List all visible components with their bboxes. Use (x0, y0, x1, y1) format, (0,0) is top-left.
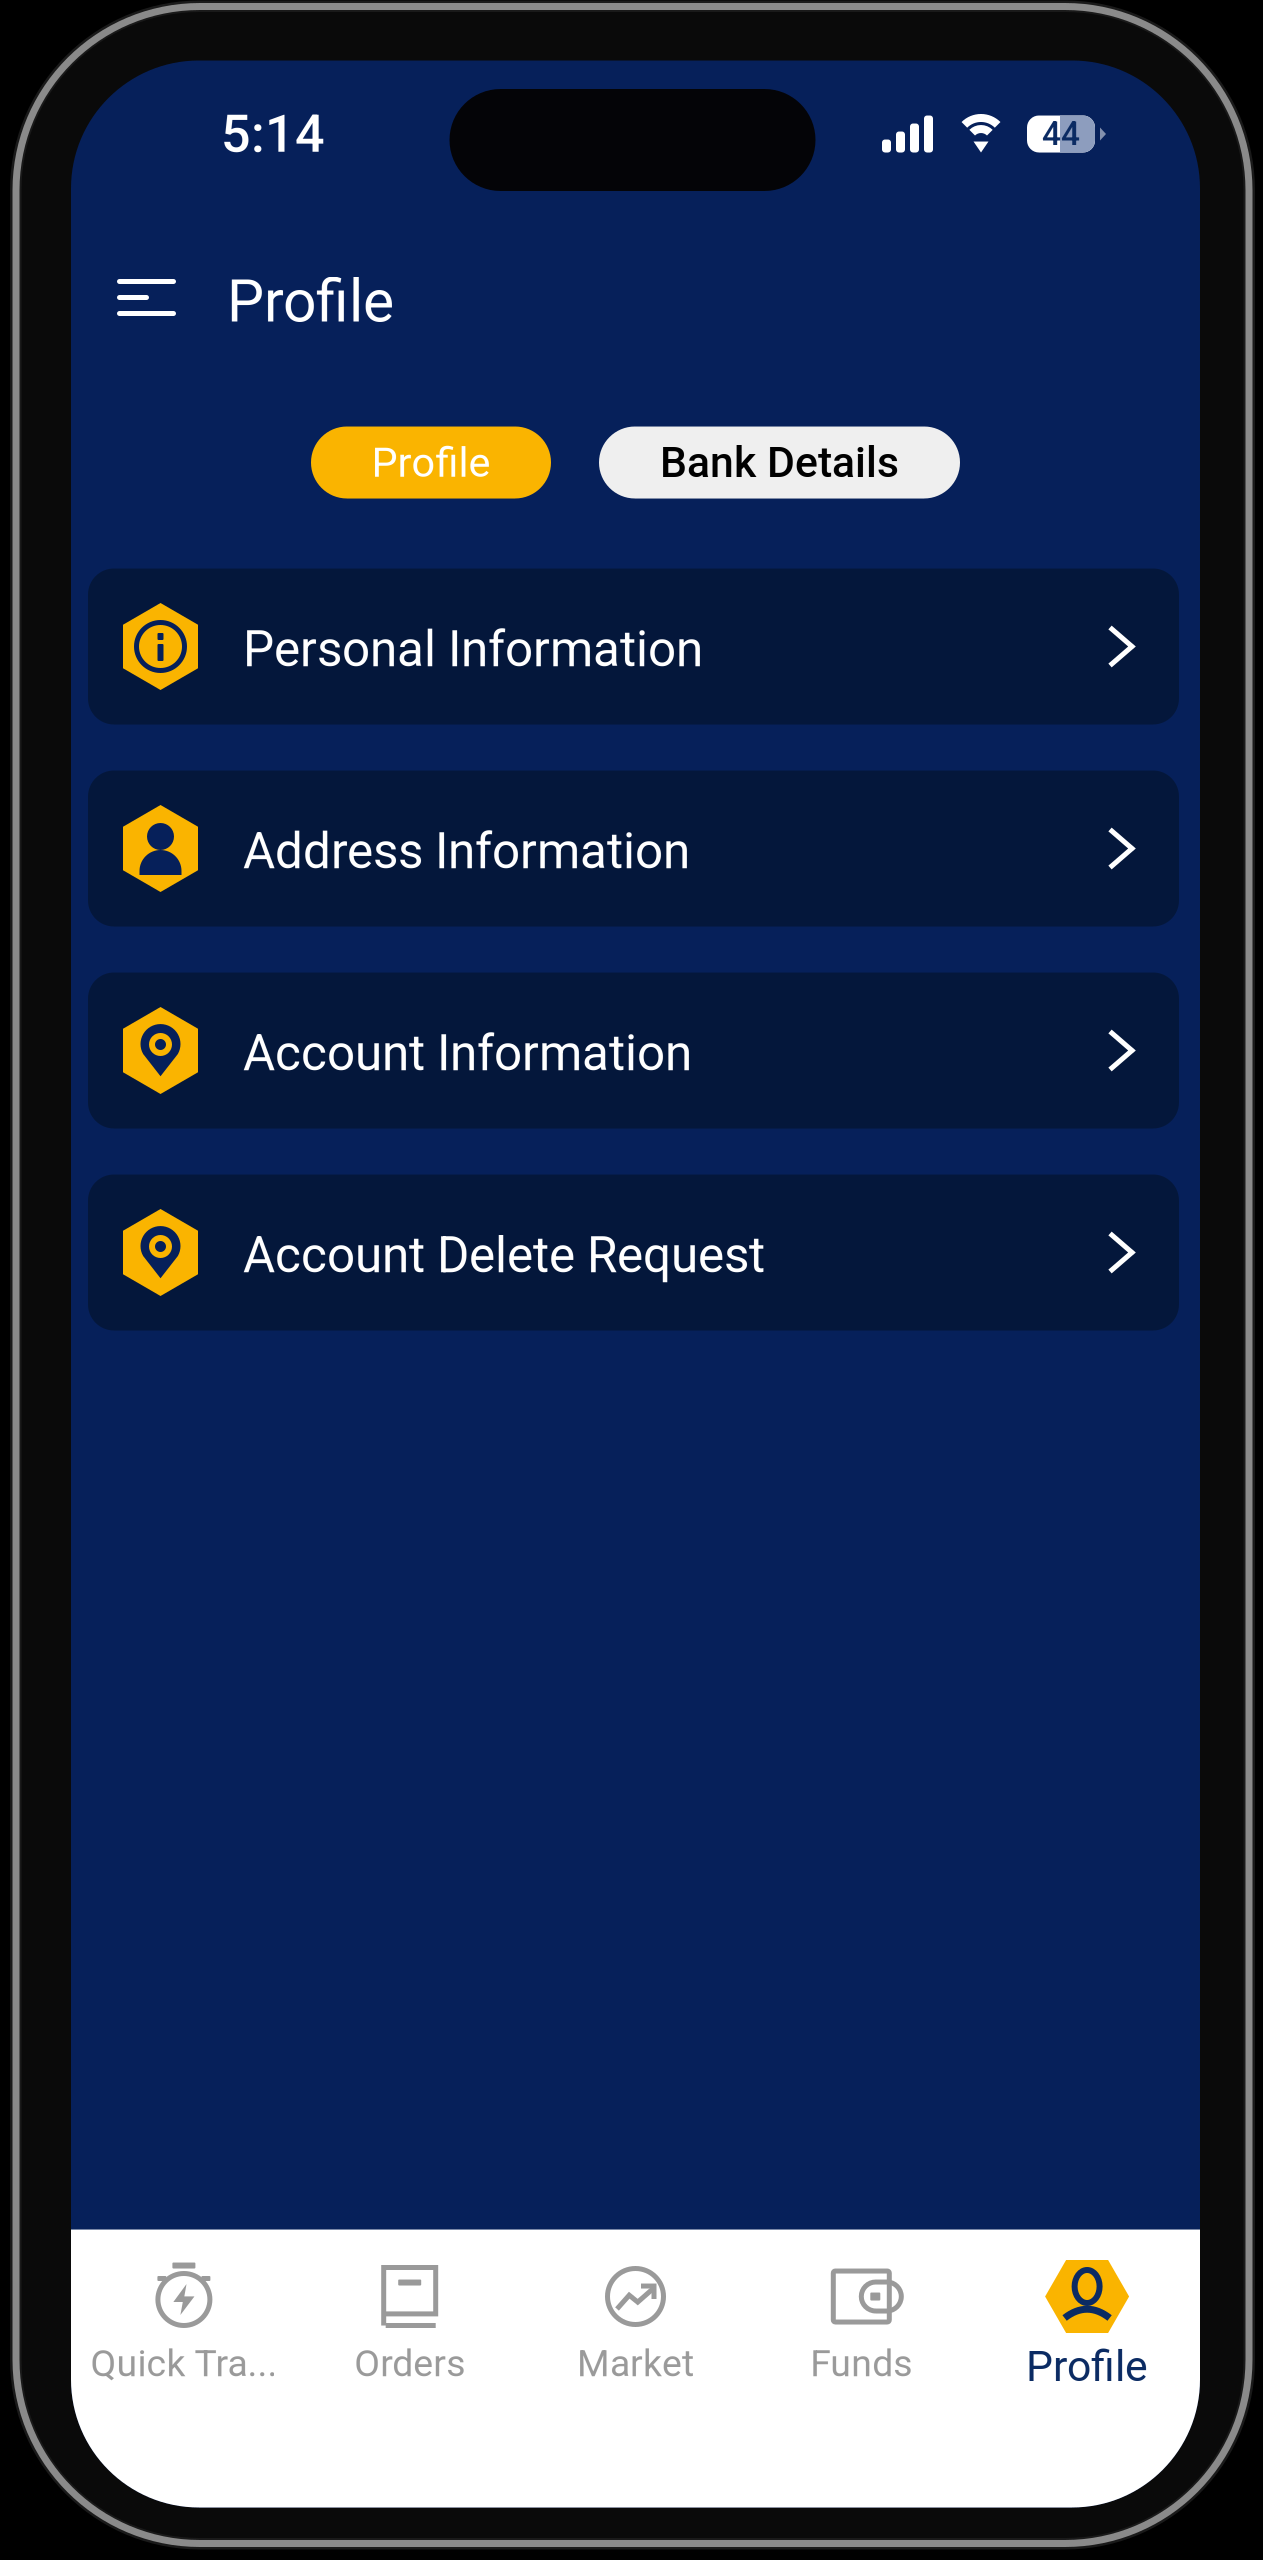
staticText: 44 (1042, 114, 1080, 154)
staticText: Orders (354, 2341, 465, 2385)
button[interactable]: Profile (974, 2229, 1200, 2507)
staticText: Quick Tra... (90, 2341, 277, 2385)
staticText: Address Information (243, 823, 690, 880)
staticText: Account Information (243, 1025, 692, 1082)
button[interactable]: Account Information (88, 972, 1179, 1128)
button[interactable]: Funds (748, 2229, 974, 2507)
staticText: Profile (371, 438, 490, 487)
staticText: Personal Information (243, 621, 703, 678)
button[interactable]: Market (523, 2229, 748, 2507)
button[interactable]: Personal Information (88, 568, 1179, 724)
button[interactable]: Orders (297, 2229, 523, 2507)
staticText: Market (577, 2341, 694, 2385)
staticText: 5:14 (221, 103, 325, 164)
staticText: Bank Details (660, 437, 899, 487)
button[interactable]: Address Information (88, 770, 1179, 926)
button[interactable]: Menu (71, 245, 206, 350)
staticText: Account Delete Request (243, 1227, 765, 1284)
staticText: Profile (1026, 2341, 1148, 2391)
button[interactable]: Profile (311, 426, 551, 498)
staticText: Funds (810, 2341, 912, 2385)
button[interactable]: Quick Tra... (71, 2229, 297, 2507)
staticText: Profile (227, 267, 394, 336)
button[interactable]: Bank Details (599, 426, 960, 498)
button[interactable]: Account Delete Request (88, 1174, 1179, 1330)
